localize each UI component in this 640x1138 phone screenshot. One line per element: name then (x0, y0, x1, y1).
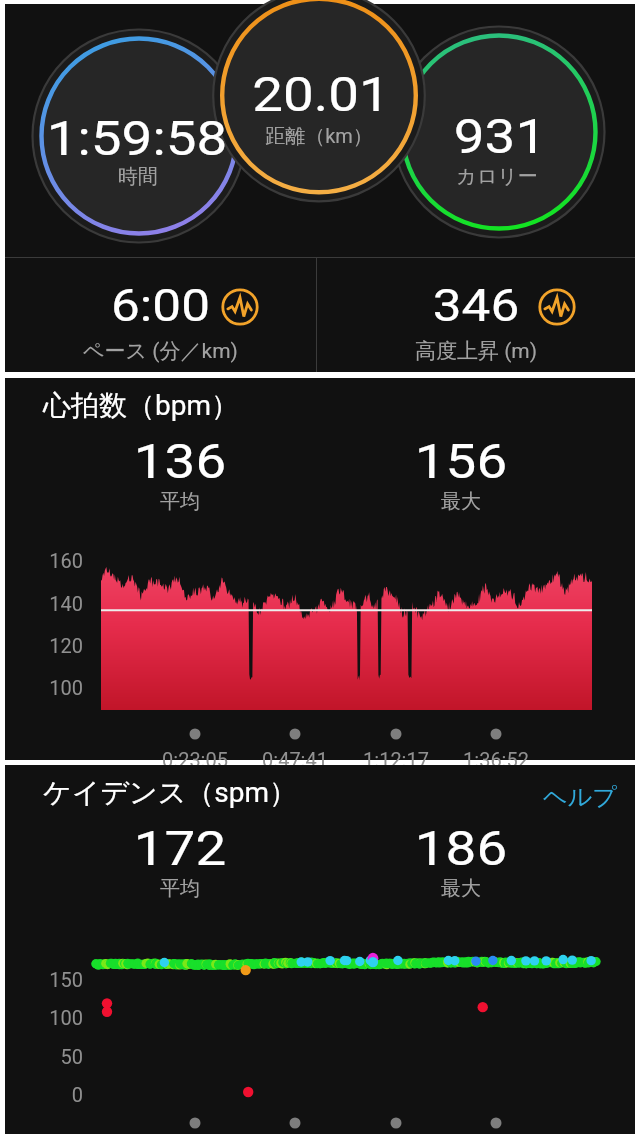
staticText: 1:12:17 (316, 748, 476, 771)
staticText: 最大 (281, 489, 640, 514)
staticText: ヘルプ (543, 782, 617, 812)
staticText: 高度上昇 (m) (317, 338, 635, 364)
staticText: 0:23:05 (115, 748, 275, 771)
staticText: 時間 (0, 164, 318, 189)
staticText: 150 (7, 968, 83, 991)
staticText: 心拍数（bpm） (43, 388, 239, 423)
staticText: カロリー (317, 164, 640, 189)
staticText: 172 (0, 820, 385, 876)
button[interactable]: 6:00 (5, 258, 316, 372)
staticText: 0 (7, 1083, 83, 1106)
staticText: 50 (7, 1045, 83, 1068)
staticText: 931 (295, 108, 640, 164)
staticText: 160 (7, 549, 83, 572)
staticText: 346 (295, 279, 640, 332)
staticText: 100 (7, 1006, 83, 1029)
staticText: 距離（km） (139, 124, 499, 149)
staticText: 20.01 (116, 66, 526, 122)
staticText: 最大 (281, 876, 640, 901)
staticText: 136 (0, 433, 385, 489)
staticText: 1:59:58 (0, 110, 342, 166)
other: Details (538, 288, 576, 326)
staticText: 100 (7, 676, 83, 699)
staticText: ケイデンス（spm） (43, 775, 298, 810)
staticText: 1:36:52 (416, 748, 576, 771)
staticText: 156 (256, 433, 640, 489)
button[interactable]: 346 (317, 258, 635, 372)
staticText: 平均 (0, 876, 360, 901)
staticText: 平均 (0, 489, 360, 514)
staticText: 140 (7, 592, 83, 615)
staticText: 120 (7, 634, 83, 657)
other: Details (221, 288, 259, 326)
button[interactable]: ヘルプ (533, 774, 627, 820)
staticText: 186 (256, 820, 640, 876)
staticText: ペース (分／km) (5, 338, 316, 364)
staticText: 6:00 (0, 279, 338, 332)
staticText: 0:47:41 (215, 748, 375, 771)
